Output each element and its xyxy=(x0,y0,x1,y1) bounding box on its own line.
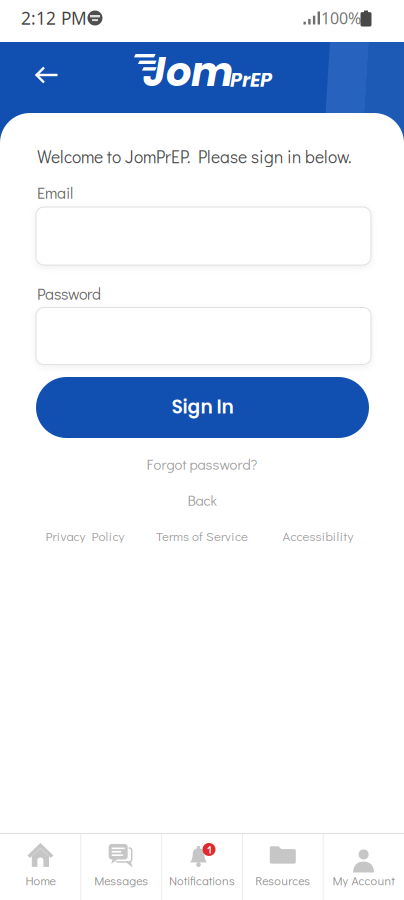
staticText: Back xyxy=(187,490,216,510)
staticText: 2:12 PM xyxy=(21,6,87,29)
staticText: Password xyxy=(37,283,101,304)
staticText: Home xyxy=(25,872,55,889)
staticText: Messages xyxy=(94,872,148,889)
staticText: 100% xyxy=(321,7,361,29)
staticText: Terms of Service xyxy=(156,527,248,544)
staticText: My Account xyxy=(333,872,395,889)
staticText: Welcome to JomPrEP. Please sign in below… xyxy=(37,145,352,168)
staticText: PrEP xyxy=(230,66,272,94)
staticText: Jom xyxy=(143,44,233,100)
staticText: Forgot password? xyxy=(146,454,257,474)
staticText: Accessibility xyxy=(282,527,353,544)
staticText: Notifications xyxy=(169,872,235,889)
staticText: Resources xyxy=(255,872,310,889)
staticText: Sign In xyxy=(171,394,233,420)
staticText: Privacy Policy xyxy=(45,527,124,544)
staticText: Email xyxy=(37,182,73,203)
staticText: 1 xyxy=(207,842,211,856)
